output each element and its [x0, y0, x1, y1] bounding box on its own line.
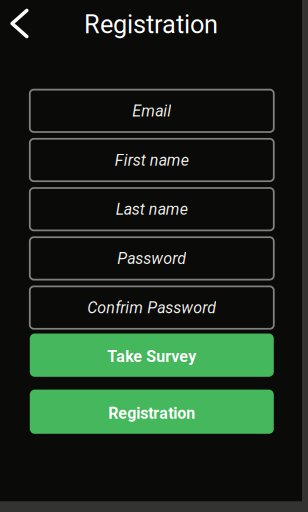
- button[interactable]: Email: [30, 90, 274, 132]
- staticText: First name: [115, 151, 189, 170]
- staticText: Take Survey: [107, 347, 196, 366]
- button[interactable]: Take Survey: [30, 333, 274, 377]
- staticText: Password: [117, 249, 186, 268]
- button[interactable]: Registration: [30, 390, 274, 434]
- button[interactable]: Back: [0, 0, 38, 47]
- button[interactable]: Last name: [30, 188, 274, 230]
- staticText: Last name: [116, 200, 188, 219]
- button[interactable]: Confrim Password: [30, 286, 274, 329]
- staticText: Registration: [84, 10, 218, 39]
- staticText: Confrim Password: [87, 298, 216, 317]
- button[interactable]: Password: [30, 237, 274, 280]
- staticText: Registration: [108, 404, 195, 423]
- button[interactable]: First name: [30, 139, 274, 181]
- staticText: Email: [132, 102, 171, 120]
